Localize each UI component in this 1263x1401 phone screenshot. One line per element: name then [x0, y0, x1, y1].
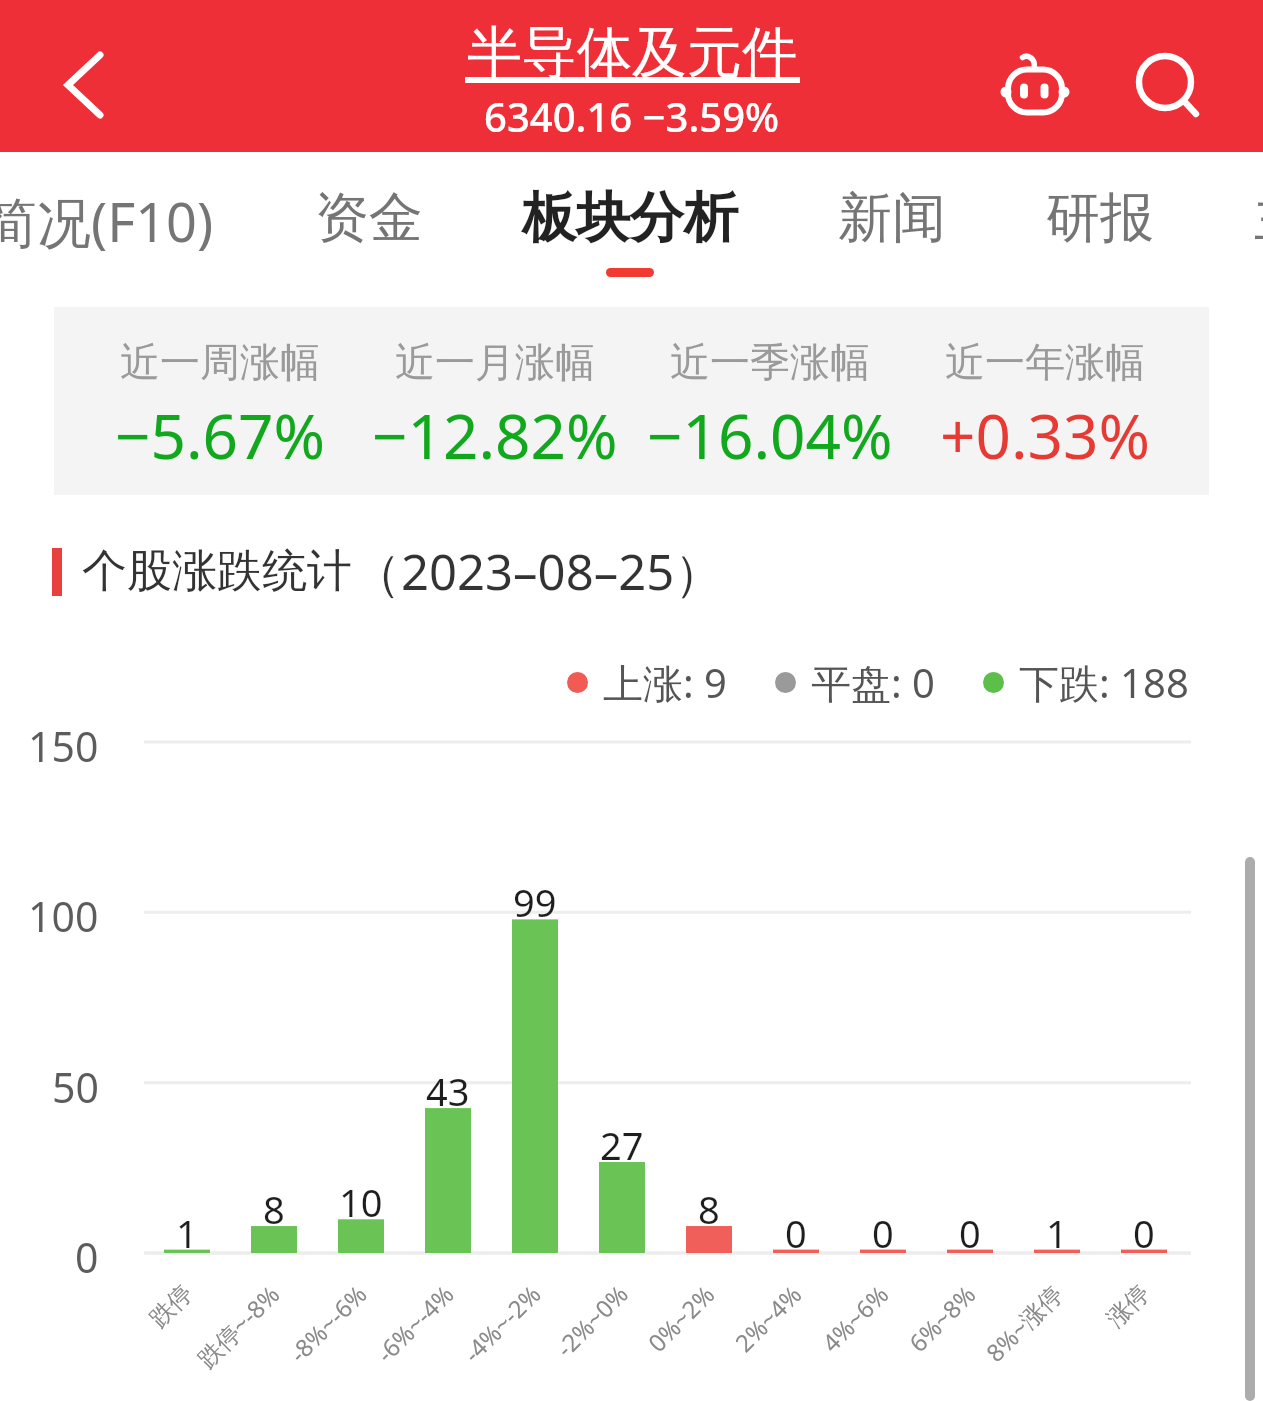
staticText: 板块分析	[522, 184, 738, 252]
staticText: 研报	[1046, 184, 1154, 252]
button[interactable]: 简况(F10)	[0, 184, 265, 288]
staticText: 6340.16 −3.59%	[484, 89, 780, 143]
button[interactable]: 板块分析	[472, 184, 788, 288]
staticText: 资金	[315, 184, 423, 252]
staticText: 近一月涨幅	[395, 337, 595, 387]
staticText: −5.67%	[115, 393, 325, 477]
button[interactable]: 近一年涨幅	[907, 337, 1182, 477]
button[interactable]: 新闻	[788, 184, 996, 288]
staticText: 简况(F10)	[0, 184, 214, 258]
staticText: 近一季涨幅	[670, 337, 870, 387]
staticText: 主	[1254, 184, 1263, 252]
staticText: 近一年涨幅	[945, 337, 1145, 387]
staticText: 新闻	[838, 184, 946, 252]
button[interactable]: 平盘: 0	[775, 655, 935, 710]
button[interactable]: Search	[1120, 37, 1210, 127]
button[interactable]: Back	[39, 40, 129, 130]
button[interactable]: 上涨: 9	[567, 655, 727, 710]
staticText: 下跌: 188	[1019, 655, 1189, 710]
staticText: 半导体及元件	[467, 18, 797, 87]
staticText: 上涨: 9	[603, 655, 727, 710]
staticText: （2023–08–25）	[352, 538, 724, 605]
staticText: −16.04%	[647, 393, 893, 477]
button[interactable]: 资金	[265, 184, 473, 288]
staticText: +0.33%	[940, 393, 1150, 477]
button[interactable]: 下跌: 188	[983, 655, 1189, 710]
staticText: 平盘: 0	[811, 655, 935, 710]
staticText: 个股涨跌统计	[82, 543, 352, 600]
button[interactable]: 研报	[996, 184, 1204, 288]
button[interactable]: 近一周涨幅	[82, 337, 357, 477]
staticText: −12.82%	[372, 393, 618, 477]
button[interactable]: AI assistant	[990, 46, 1080, 136]
button[interactable]: 近一季涨幅	[632, 337, 907, 477]
button[interactable]: 近一月涨幅	[357, 337, 632, 477]
staticText: 近一周涨幅	[120, 337, 320, 387]
button[interactable]: 主	[1204, 184, 1263, 288]
